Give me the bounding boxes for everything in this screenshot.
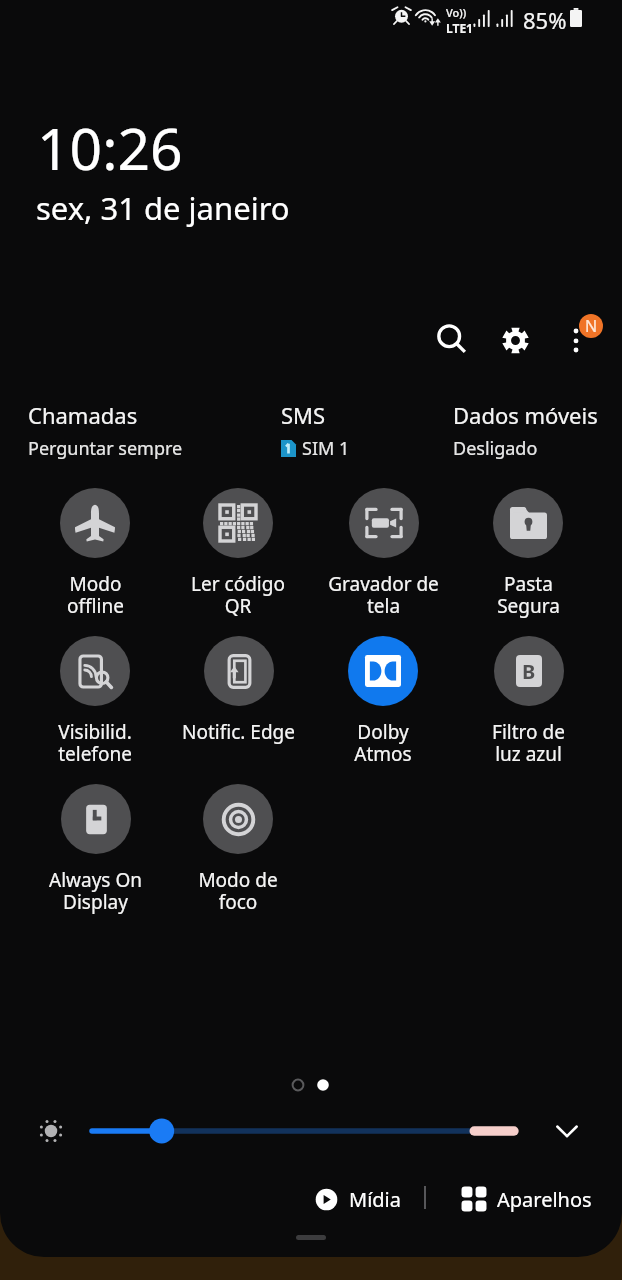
staticText: Ler código QR — [191, 571, 285, 619]
button[interactable]: SMS — [281, 400, 350, 461]
staticText: Modo offline — [67, 571, 124, 619]
staticText: Desligado — [453, 436, 538, 461]
button[interactable]: Mídia — [307, 1182, 409, 1216]
button[interactable] — [83, 1112, 525, 1150]
button[interactable]: Dados móveis — [453, 400, 598, 461]
staticText: Visibilid. telefone — [58, 719, 132, 767]
button[interactable]: Brightness — [31, 1111, 71, 1151]
button[interactable]: Modo offline — [24, 488, 166, 619]
staticText: N — [585, 315, 598, 337]
button[interactable]: Search — [427, 314, 476, 363]
button[interactable]: Gravador de tela — [312, 488, 454, 619]
staticText: Dolby Atmos — [354, 719, 412, 767]
staticText: Perguntar sempre — [28, 436, 183, 461]
staticText: SMS — [281, 400, 326, 430]
button[interactable]: Collapse panel — [0, 1228, 622, 1246]
button[interactable]: B — [457, 636, 599, 767]
button[interactable]: Notific. Edge — [167, 636, 309, 745]
staticText: Aparelhos — [497, 1186, 592, 1213]
button[interactable]: Aparelhos — [453, 1182, 600, 1216]
button[interactable]: Ler código QR — [167, 488, 309, 619]
staticText: Dados móveis — [453, 400, 598, 430]
staticText: 85% — [523, 5, 567, 35]
staticText: SIM 1 — [302, 436, 350, 461]
staticText: 10:26 — [37, 109, 183, 187]
staticText: Mídia — [349, 1186, 401, 1213]
staticText: Chamadas — [28, 400, 138, 430]
staticText: Filtro de luz azul — [492, 719, 565, 767]
staticText: Gravador de tela — [328, 571, 439, 619]
button[interactable]: Pasta Segura — [457, 488, 599, 619]
button[interactable]: More options — [556, 305, 608, 357]
staticText: Pasta Segura — [497, 571, 560, 619]
button[interactable]: Chamadas — [28, 400, 183, 461]
button[interactable]: Settings — [491, 316, 540, 365]
staticText: Modo de foco — [198, 867, 278, 915]
button[interactable]: Visibilid. telefone — [24, 636, 166, 767]
staticText: Notific. Edge — [182, 719, 295, 745]
staticText: Always On Display — [49, 867, 142, 915]
staticText: LTE1 — [446, 20, 473, 36]
button[interactable]: Expand — [545, 1109, 589, 1153]
staticText: B — [522, 658, 536, 685]
staticText: sex, 31 de janeiro — [36, 187, 290, 229]
button[interactable]: Always On Display — [24, 784, 166, 915]
button[interactable]: Modo de foco — [167, 784, 309, 915]
staticText: Vo)) — [446, 5, 467, 20]
button[interactable]: Dolby Atmos — [312, 636, 454, 767]
